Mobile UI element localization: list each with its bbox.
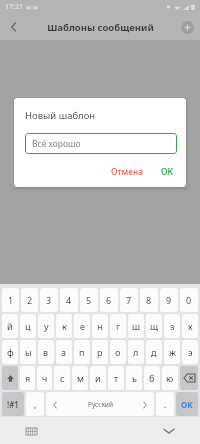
staticText: ы [25,346,32,358]
button[interactable]: Всё хорошо [25,133,177,154]
button[interactable]: Back [4,17,24,37]
staticText: м [77,372,84,384]
staticText: 9 [166,294,172,306]
staticText: 4 [66,294,72,306]
button[interactable]: о [110,340,126,364]
button[interactable]: Shift [2,366,18,390]
staticText: ОК [161,166,173,178]
button[interactable]: з [164,314,180,338]
staticText: ф [7,346,14,358]
staticText: 2 [27,294,33,306]
staticText: Русский [88,400,113,409]
staticText: н [97,320,103,332]
button[interactable]: ь [126,366,142,390]
button[interactable]: л [128,340,144,364]
button[interactable]: Add template [181,21,194,34]
staticText: х [188,320,193,332]
button[interactable]: Отмена [107,163,148,181]
staticText: 7 [126,294,132,306]
staticText: т [114,372,119,384]
staticText: OK [181,399,193,410]
staticText: щ [150,320,159,332]
button[interactable]: ч [37,366,52,390]
button[interactable]: к [56,314,72,338]
staticText: ж [169,346,176,358]
button[interactable]: 5 [80,288,98,312]
button[interactable]: я [20,366,35,390]
staticText: 17:21 [5,2,23,12]
button[interactable]: й [2,314,18,338]
button[interactable]: ы [20,340,36,364]
button[interactable]: Backspace [180,366,198,390]
button[interactable]: 3 [40,288,58,312]
button[interactable]: и [90,366,106,390]
staticText: Отмена [111,166,144,178]
button[interactable]: . [156,392,174,416]
button[interactable]: х [182,314,198,338]
button[interactable]: 2 [21,288,38,312]
button[interactable]: с [54,366,70,390]
button[interactable]: Hide keyboard [160,422,178,440]
staticText: !#1 [7,399,19,410]
staticText: . [164,398,167,410]
button[interactable]: 9 [160,288,178,312]
button[interactable]: ж [164,340,180,364]
button[interactable]: п [74,340,90,364]
staticText: Новый шаблон [25,109,96,122]
button[interactable]: 1 [2,288,19,312]
staticText: р [97,346,103,358]
staticText: и [95,372,101,384]
staticText: ч [42,372,48,384]
button[interactable]: !#1 [2,392,24,416]
staticText: д [151,346,157,358]
button[interactable]: щ [146,314,162,338]
button[interactable]: 0 [180,288,198,312]
button[interactable]: Keyboard settings [22,422,40,440]
button[interactable]: ш [128,314,144,338]
button[interactable]: OK [176,392,198,416]
button[interactable]: ц [20,314,36,338]
button[interactable]: н [92,314,108,338]
staticText: к [62,320,67,332]
staticText: 0 [186,294,192,306]
staticText: Шаблоны сообщений [47,21,154,34]
staticText: 3 [46,294,52,306]
button[interactable]: г [110,314,126,338]
staticText: п [79,346,85,358]
staticText: с [60,372,65,384]
button[interactable]: т [108,366,124,390]
staticText: ш [132,320,141,332]
button[interactable]: 8 [140,288,158,312]
button[interactable]: е [74,314,90,338]
button[interactable]: ф [2,340,18,364]
button[interactable]: , [26,392,44,416]
button[interactable]: э [182,340,198,364]
staticText: г [116,320,120,332]
button[interactable]: д [146,340,162,364]
staticText: Всё хорошо [32,138,81,150]
staticText: 1 [8,294,14,306]
button[interactable]: 7 [120,288,138,312]
staticText: в [43,346,49,358]
button[interactable]: ю [162,366,178,390]
button[interactable]: в [38,340,54,364]
staticText: 8 [146,294,152,306]
staticText: 6 [106,294,112,306]
staticText: ц [25,320,31,332]
button[interactable]: а [56,340,72,364]
button[interactable]: б [144,366,160,390]
button[interactable]: Space [46,392,154,416]
button[interactable]: у [38,314,54,338]
staticText: ю [166,372,174,384]
staticText: , [34,398,37,410]
button[interactable]: м [72,366,88,390]
staticText: ь [132,372,137,384]
button[interactable]: ОК [157,163,177,181]
staticText: б [149,372,155,384]
button[interactable]: 6 [100,288,118,312]
staticText: о [115,346,121,358]
staticText: й [7,320,13,332]
staticText: 5 [86,294,92,306]
button[interactable]: 4 [60,288,78,312]
button[interactable]: р [92,340,108,364]
